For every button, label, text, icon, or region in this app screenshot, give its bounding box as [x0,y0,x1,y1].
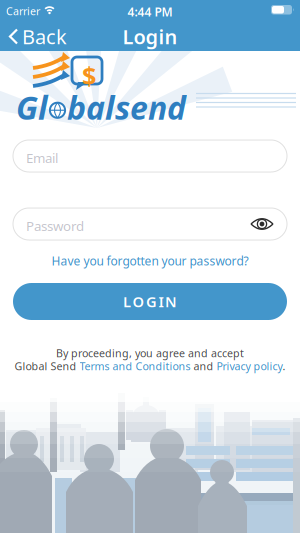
button[interactable]: Password [13,208,287,240]
staticText: and [190,359,216,373]
staticText: Password [26,217,84,235]
staticText: . [282,359,285,373]
button[interactable]: Show password [248,212,276,236]
staticText: Terms and Conditions [79,359,190,373]
button[interactable]: LOGIN [13,283,287,320]
staticText: Gl [16,86,48,128]
staticText: Login [122,23,177,50]
button[interactable]: Email [13,140,287,172]
button[interactable]: Terms and Conditions [79,359,190,373]
staticText: Have you forgotten your password? [51,253,248,269]
staticText: balsend [67,86,186,128]
staticText: Email [26,149,58,167]
staticText: Back [22,23,67,50]
button[interactable]: Back [8,20,67,53]
staticText: Global Send [14,359,79,373]
staticText: Privacy policy [216,359,282,373]
staticText: By proceeding, you agree and accept [56,346,244,360]
staticText: $ [82,58,96,92]
staticText: Carrier [6,4,40,18]
staticText: LOGIN [123,292,177,311]
button[interactable]: Have you forgotten your password? [0,253,300,269]
button[interactable]: Privacy policy [216,359,282,373]
staticText: 4:44 PM [127,4,172,20]
